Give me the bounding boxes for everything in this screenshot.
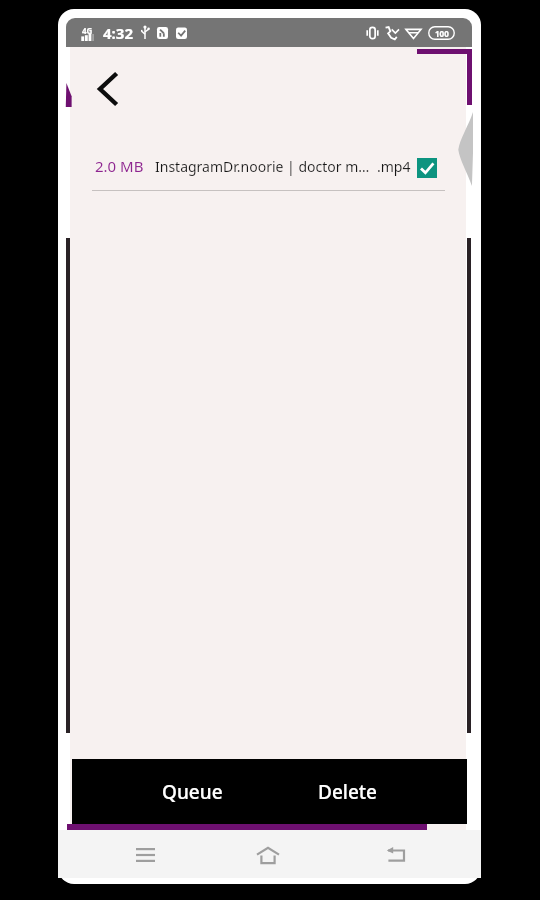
button[interactable]: Queue (114, 759, 270, 824)
button[interactable]: Back (376, 835, 416, 875)
button[interactable]: Home (248, 835, 288, 875)
button[interactable]: Selected (417, 158, 437, 178)
button[interactable]: Delete (270, 759, 426, 824)
button[interactable]: 2.0 MB (92, 146, 445, 186)
button[interactable]: Recent apps (125, 835, 165, 875)
staticText: 2.0 MB (95, 156, 144, 176)
staticText: .mp4 (377, 157, 411, 176)
staticText: Delete (318, 779, 378, 805)
staticText: InstagramDr.noorie | doctor m… (155, 157, 370, 176)
staticText: 100 (435, 28, 449, 39)
staticText: Queue (162, 779, 223, 805)
staticText: 4:32 (103, 23, 133, 43)
button[interactable]: Back (83, 65, 131, 113)
staticText: 4G (82, 25, 93, 36)
